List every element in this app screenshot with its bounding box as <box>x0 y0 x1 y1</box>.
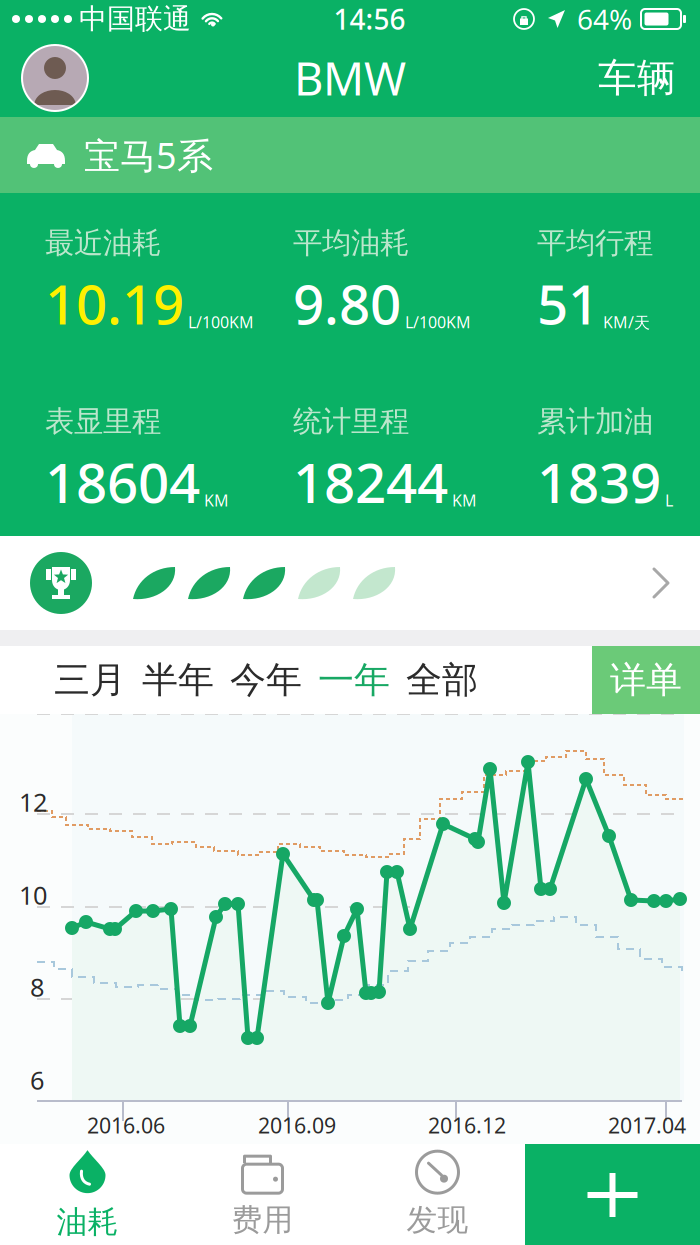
staticText: 64% <box>577 0 632 38</box>
button[interactable] <box>0 536 700 630</box>
staticText: 油耗 <box>56 1203 118 1241</box>
button[interactable]: 费用 <box>175 1144 350 1245</box>
staticText: 车辆 <box>598 54 676 102</box>
staticText: 半年 <box>142 658 214 702</box>
staticText: 中国联通 <box>79 2 191 36</box>
staticText: L <box>665 490 673 511</box>
staticText: 2016.12 <box>428 1111 506 1139</box>
staticText: KM <box>204 490 229 511</box>
staticText: 10 <box>19 878 47 912</box>
button[interactable]: 一年 <box>310 646 398 714</box>
button[interactable]: 三月 <box>46 646 134 714</box>
staticText: 一年 <box>318 658 390 702</box>
button[interactable]: 全部 <box>398 646 486 714</box>
staticText: KM <box>452 490 477 511</box>
button[interactable]: 今年 <box>222 646 310 714</box>
staticText: 统计里程 <box>293 403 409 439</box>
staticText: 14:56 <box>333 0 405 38</box>
staticText: 10.19 <box>45 267 184 340</box>
button[interactable]: 详单 <box>592 646 700 714</box>
staticText: 费用 <box>231 1201 293 1239</box>
staticText: L/100KM <box>405 311 471 333</box>
staticText: 全部 <box>406 658 478 702</box>
staticText: BMW <box>294 48 406 108</box>
staticText: 18604 <box>45 445 200 518</box>
staticText: 三月 <box>54 658 126 702</box>
staticText: 9.80 <box>293 267 401 340</box>
button[interactable]: 半年 <box>134 646 222 714</box>
staticText: 表显里程 <box>45 403 161 439</box>
staticText: KM/天 <box>603 311 650 333</box>
staticText: 累计加油 <box>537 403 653 439</box>
staticText: 51 <box>537 267 599 340</box>
staticText: 平均行程 <box>537 225 653 261</box>
button[interactable]: 车辆 <box>598 54 676 102</box>
button[interactable]: Add record <box>525 1144 700 1245</box>
staticText: 最近油耗 <box>45 225 161 261</box>
staticText: 8 <box>30 970 44 1004</box>
staticText: 1839 <box>537 445 661 518</box>
staticText: 6 <box>30 1063 44 1097</box>
button[interactable]: Profile <box>22 45 88 111</box>
staticText: 平均油耗 <box>293 225 409 261</box>
staticText: L/100KM <box>188 311 254 333</box>
staticText: 详单 <box>610 658 682 702</box>
staticText: 宝马5系 <box>84 131 213 179</box>
staticText: 2017.04 <box>608 1111 686 1139</box>
staticText: 2016.06 <box>87 1111 165 1139</box>
staticText: 18244 <box>293 445 448 518</box>
staticText: 2016.09 <box>258 1111 336 1139</box>
button[interactable]: 宝马5系 <box>0 117 700 193</box>
button[interactable]: 油耗 <box>0 1144 175 1245</box>
staticText: 12 <box>19 785 47 819</box>
staticText: 今年 <box>230 658 302 702</box>
staticText: 发现 <box>406 1201 468 1239</box>
button[interactable]: 发现 <box>350 1144 525 1245</box>
